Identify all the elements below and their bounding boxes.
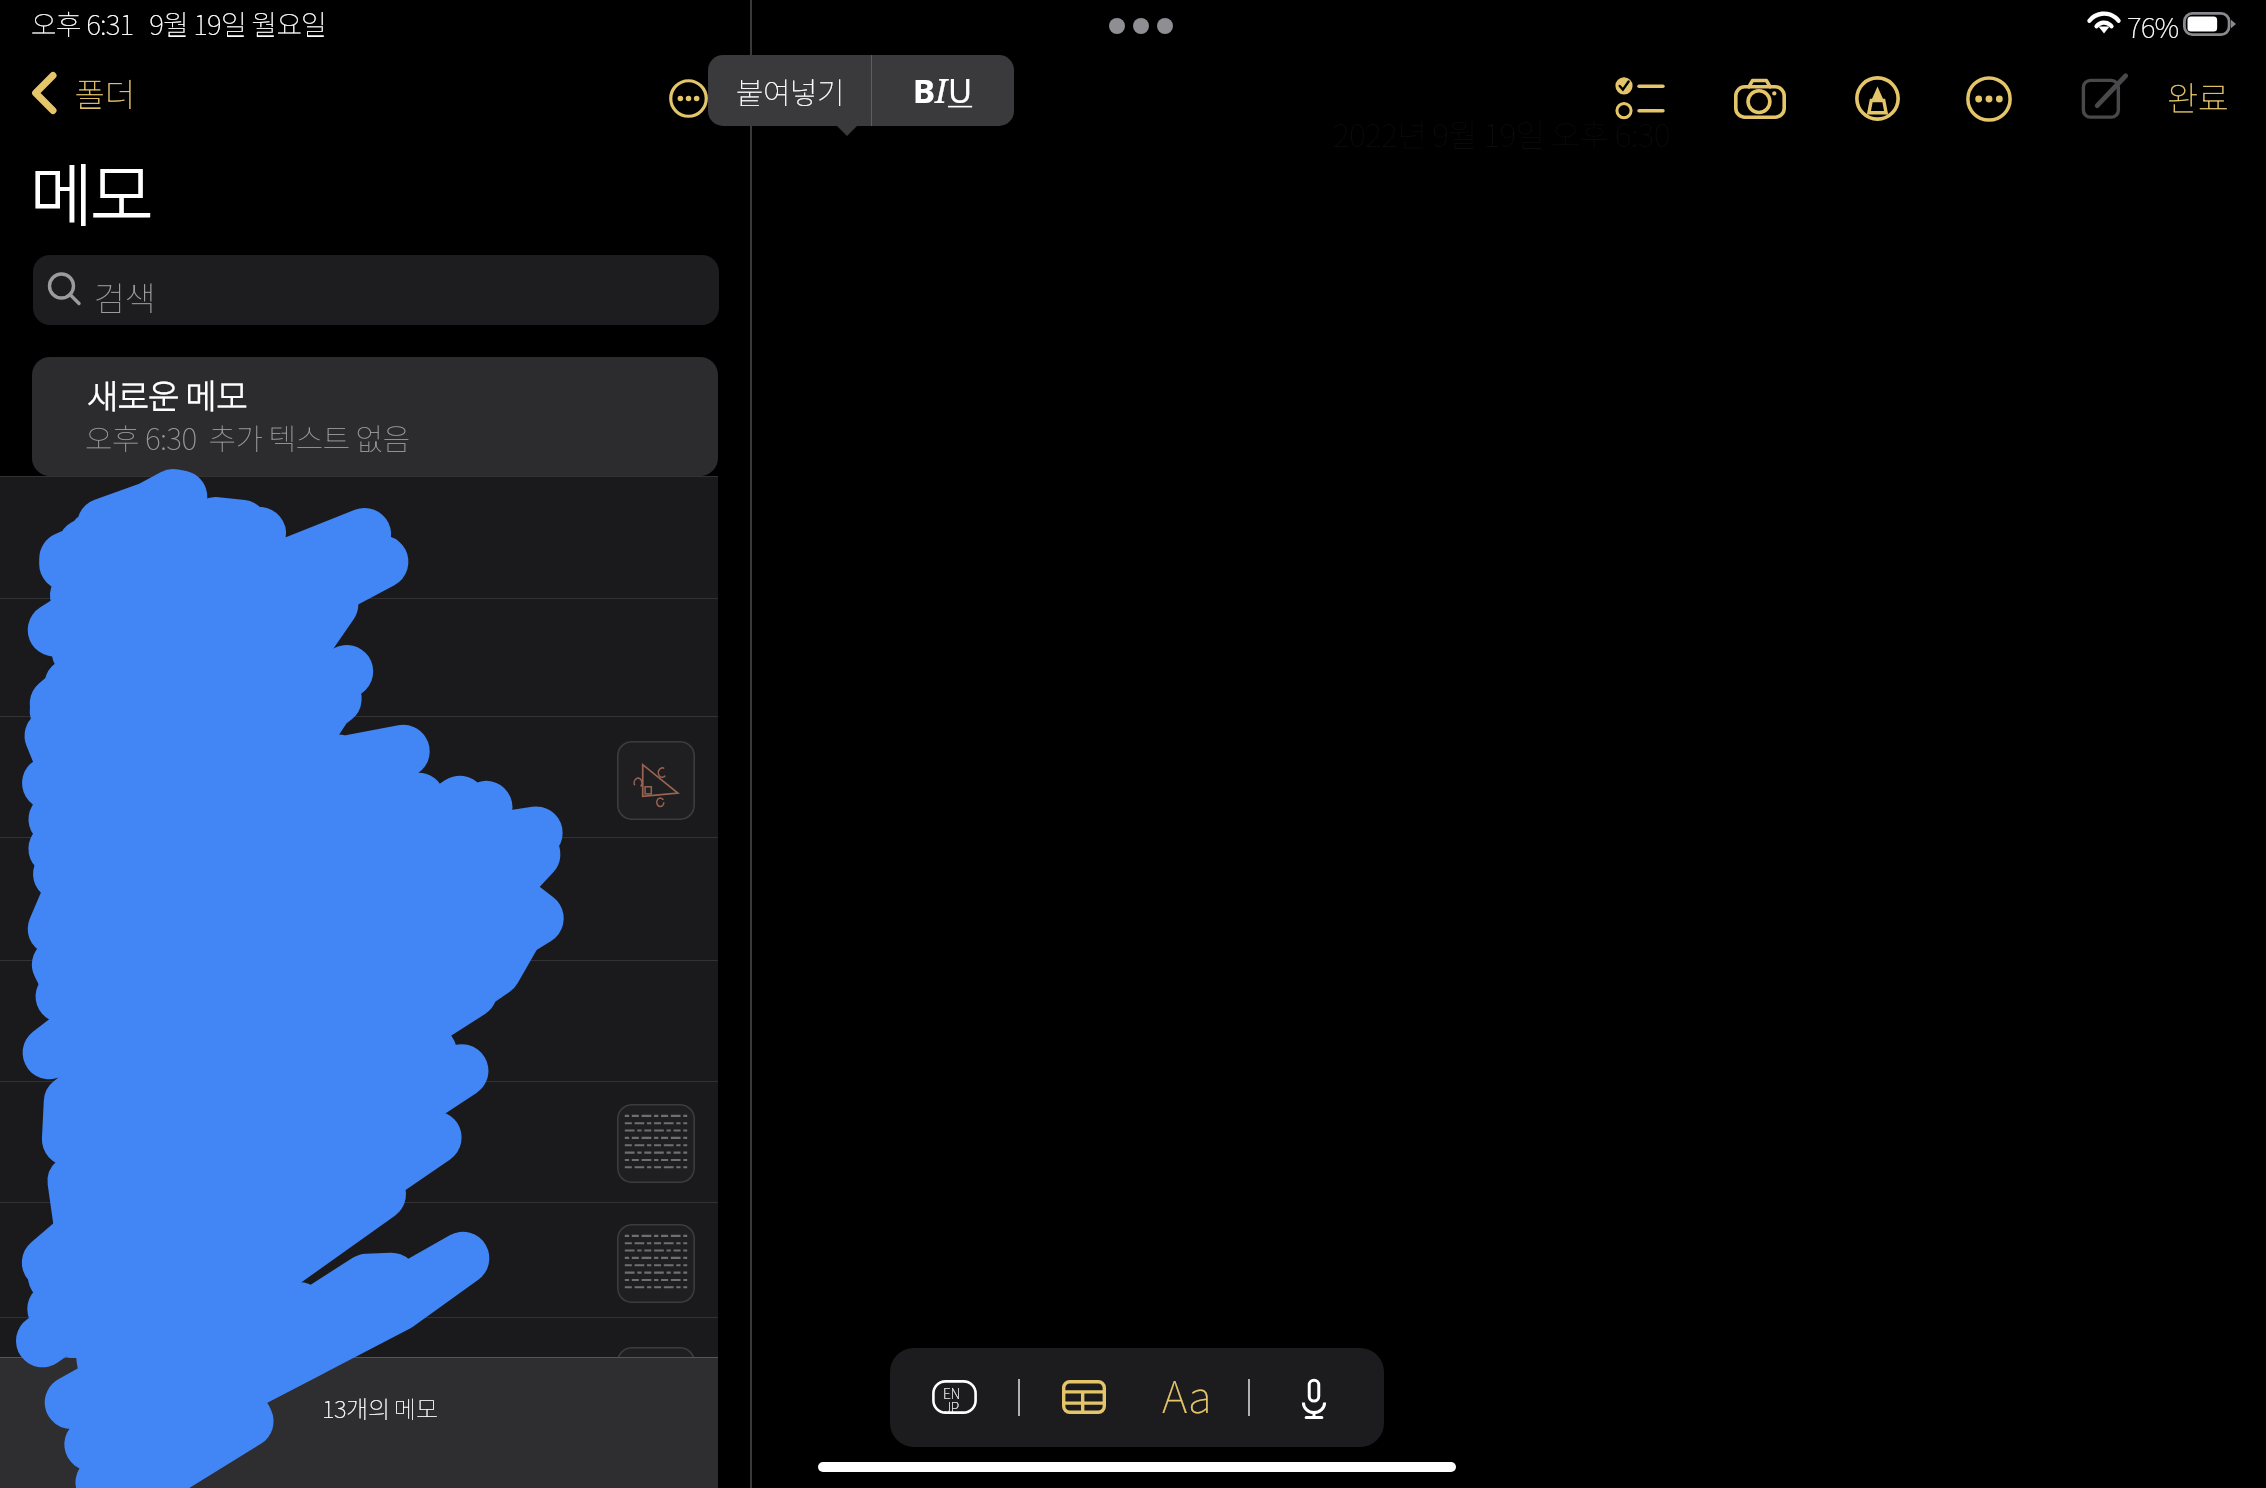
button[interactable]: Table xyxy=(1062,1380,1106,1414)
button[interactable]: More options xyxy=(670,80,707,117)
staticText: 새로운 메모 xyxy=(87,370,247,419)
staticText: Aa xyxy=(1162,1362,1211,1426)
button[interactable]: 새로운 메모 xyxy=(32,357,718,476)
button[interactable]: 폴더 xyxy=(29,69,135,117)
staticText: I xyxy=(935,68,948,113)
button[interactable]: Aa xyxy=(1162,1362,1211,1426)
staticText: 2022년 9월 19일 오후 6:30 xyxy=(1333,110,1670,156)
button[interactable]: Camera xyxy=(1734,79,1786,118)
button[interactable]: B xyxy=(872,55,1014,126)
staticText: 오후 6:31 9월 19일 월요일 xyxy=(31,3,327,44)
staticText: 13개의 메모 xyxy=(322,1390,438,1425)
button[interactable]: New note xyxy=(2082,73,2128,119)
staticText: U xyxy=(948,68,973,113)
button[interactable]: 완료 xyxy=(2167,72,2229,121)
staticText: 76% xyxy=(2127,6,2179,47)
staticText: EN xyxy=(943,1383,960,1403)
button[interactable]: Keyboard language xyxy=(932,1380,977,1414)
button[interactable]: 검색 xyxy=(33,255,719,325)
staticText: 메모 xyxy=(30,141,152,239)
staticText: 완료 xyxy=(2167,72,2229,121)
staticText: B xyxy=(913,68,935,113)
button[interactable]: Dictate xyxy=(1300,1379,1328,1419)
button[interactable]: Multitasking xyxy=(1109,18,1173,34)
staticText: 오후 6:30 추가 텍스트 없음 xyxy=(85,415,410,458)
button[interactable]: More options xyxy=(1967,77,2011,121)
staticText: 검색 xyxy=(94,272,156,321)
button[interactable]: 붙여넣기 xyxy=(708,55,871,126)
button[interactable]: Markup xyxy=(1856,77,1899,120)
staticText: JP xyxy=(944,1397,959,1417)
staticText: 폴더 xyxy=(75,69,135,117)
staticText: 붙여넣기 xyxy=(736,69,844,112)
button[interactable]: Checklist xyxy=(1615,77,1664,119)
